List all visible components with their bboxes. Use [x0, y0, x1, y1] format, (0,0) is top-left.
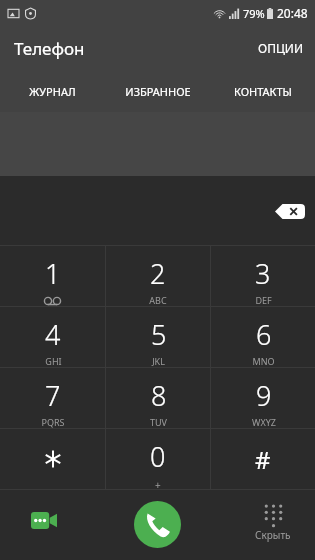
button[interactable]: 8 — [106, 368, 210, 428]
button[interactable]: 5 — [106, 307, 210, 367]
button[interactable]: ЖУРНАЛ — [0, 70, 105, 112]
staticText: 20:48 — [277, 5, 308, 21]
button[interactable]: 9 — [211, 368, 315, 428]
staticText: WXYZ — [252, 416, 276, 428]
staticText: PQRS — [41, 416, 65, 428]
button[interactable]: Backspace — [273, 200, 307, 222]
staticText: ОПЦИИ — [258, 40, 303, 56]
button[interactable]: 7 — [0, 368, 105, 428]
staticText: 3 — [255, 255, 271, 292]
staticText: # — [255, 443, 271, 476]
button[interactable]: 2 — [106, 246, 210, 306]
staticText: 8 — [151, 377, 167, 414]
staticText: + — [155, 478, 161, 489]
staticText: TUV — [150, 416, 167, 428]
staticText: 5 — [151, 316, 167, 353]
button[interactable]: КОНТАКТЫ — [210, 70, 315, 112]
staticText: ABC — [149, 294, 167, 306]
staticText: КОНТАКТЫ — [234, 84, 292, 99]
staticText: ЖУРНАЛ — [29, 84, 76, 99]
staticText: 9 — [256, 377, 272, 414]
staticText: 4 — [45, 316, 61, 353]
button[interactable]: 1 — [0, 246, 105, 306]
staticText: GHI — [45, 355, 62, 367]
button[interactable]: Скрыть — [249, 498, 297, 548]
button[interactable]: 0 — [106, 429, 210, 489]
staticText: 6 — [256, 316, 272, 353]
button[interactable]: 3 — [211, 246, 315, 306]
staticText: JKL — [152, 355, 165, 367]
button[interactable]: 4 — [0, 307, 105, 367]
button[interactable]: Video call — [22, 498, 66, 542]
staticText: Телефон — [14, 37, 85, 60]
button[interactable]: ОПЦИИ — [246, 30, 315, 66]
button[interactable]: Call — [134, 501, 181, 548]
staticText: Скрыть — [255, 528, 291, 542]
button[interactable] — [0, 429, 105, 489]
staticText: DEF — [255, 294, 272, 306]
staticText: MNO — [252, 355, 275, 367]
button[interactable]: # — [211, 429, 315, 489]
button[interactable]: ИЗБРАННОЕ — [105, 70, 210, 112]
staticText: ИЗБРАННОЕ — [125, 84, 191, 99]
staticText: 7 — [45, 377, 61, 414]
staticText: 2 — [150, 255, 166, 292]
staticText: 1 — [45, 255, 61, 292]
button[interactable]: 6 — [211, 307, 315, 367]
staticText: 0 — [150, 438, 166, 475]
staticText: 79% — [243, 6, 265, 21]
